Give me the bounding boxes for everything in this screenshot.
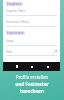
button[interactable]: Ergebnisse xyxy=(6,31,25,35)
staticText: und Festmeter xyxy=(4,81,60,87)
button[interactable]: Profile erstellen xyxy=(0,74,64,94)
staticText: berechnen xyxy=(4,88,60,94)
staticText: Länge xyxy=(6,39,14,43)
button[interactable]: Back xyxy=(14,64,19,69)
button[interactable]: Höhe xyxy=(6,50,57,56)
button[interactable]: Recent apps xyxy=(45,64,50,69)
button[interactable]: Länge xyxy=(6,39,57,46)
button[interactable]: Eingaben xyxy=(6,2,23,6)
button[interactable]: Liegende Fläche xyxy=(6,9,57,16)
staticText: Eingaben xyxy=(7,2,22,6)
staticText: Liegende Fläche xyxy=(6,9,26,13)
staticText: Gemessene Höhen xyxy=(6,20,30,24)
button[interactable]: Edit xyxy=(53,50,57,54)
button[interactable]: Home xyxy=(29,64,34,69)
button[interactable]: Gemessene Höhen xyxy=(6,20,57,27)
staticText: Höhe xyxy=(6,50,13,54)
staticText: Profile erstellen xyxy=(4,74,60,80)
staticText: Ergebnisse xyxy=(7,31,24,35)
